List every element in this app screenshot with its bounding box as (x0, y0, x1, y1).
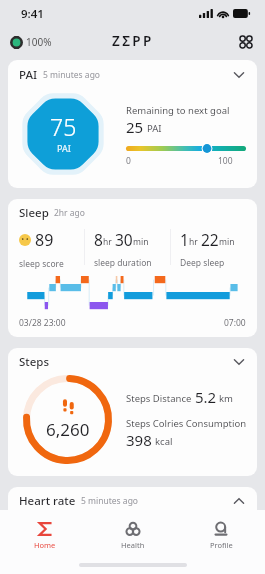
staticText: 75 (50, 111, 77, 142)
staticText: min (219, 236, 235, 248)
staticText: Heart rate (19, 493, 76, 509)
staticText: min (133, 236, 149, 248)
staticText: Steps Distance (126, 392, 192, 405)
staticText: 25 (126, 117, 144, 137)
staticText: 5.2 (195, 387, 217, 407)
staticText: 6,260 (46, 418, 90, 441)
staticText: 0 (126, 155, 131, 167)
staticText: hr (103, 236, 112, 248)
staticText: ZΣPP (112, 32, 154, 50)
staticText: 89 (35, 229, 54, 251)
button[interactable]: 100% (8, 33, 54, 51)
staticText: PAI (147, 122, 162, 135)
staticText: kcal (155, 435, 173, 448)
staticText: 5 minutes ago (43, 69, 101, 81)
staticText: 30 (115, 229, 133, 250)
staticText: hr (189, 236, 198, 248)
staticText: sleep score (19, 258, 64, 270)
staticText: Remaining to next goal (126, 104, 230, 117)
button[interactable]: Profile (177, 510, 265, 560)
button[interactable]: PAI (8, 60, 257, 188)
staticText: 07:00 (224, 317, 246, 329)
staticText: Deep sleep (180, 257, 225, 269)
staticText: PAI (57, 142, 71, 154)
staticText: 2hr ago (54, 207, 85, 219)
staticText: Sleep (19, 205, 49, 221)
staticText: 100% (26, 35, 52, 49)
staticText: km (219, 392, 233, 405)
staticText: 9:41 (21, 6, 44, 22)
staticText: 398 (126, 430, 152, 450)
staticText: 03/28 23:00 (19, 317, 66, 329)
staticText: Steps Colries Consumption (126, 417, 247, 430)
staticText: PAI (19, 67, 38, 83)
staticText: Health (121, 540, 145, 550)
staticText: 8 (94, 229, 103, 250)
staticText: Home (34, 540, 56, 550)
button[interactable]: Apps (234, 30, 258, 54)
staticText: 5 minutes ago (81, 495, 139, 507)
staticText: 1 (180, 229, 189, 250)
staticText: sleep duration (94, 257, 152, 269)
staticText: 22 (201, 229, 219, 250)
button[interactable]: Heart rate (8, 487, 257, 510)
button[interactable]: Home (0, 510, 89, 560)
staticText: Profile (210, 540, 233, 550)
staticText: 100 (218, 155, 233, 167)
button[interactable]: Steps (8, 348, 257, 476)
staticText: Steps (19, 354, 50, 370)
button[interactable]: Health (89, 510, 177, 560)
button[interactable]: Sleep (8, 199, 257, 337)
